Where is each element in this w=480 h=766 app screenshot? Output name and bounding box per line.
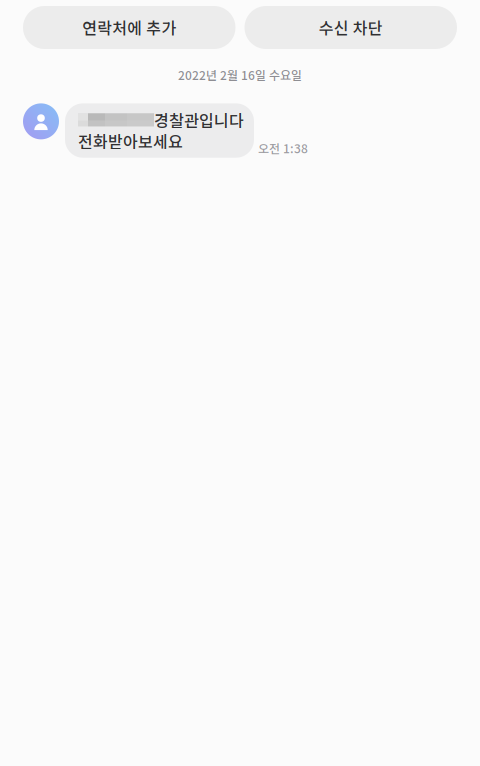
staticText: 전화받아보세요 — [78, 129, 183, 153]
button[interactable]: 연락처에 추가 — [23, 6, 235, 49]
button[interactable]: 경찰관입니다 — [65, 103, 254, 158]
button[interactable]: Sender profile — [23, 103, 59, 139]
staticText: 2022년 2월 16일 수요일 — [178, 66, 302, 83]
button[interactable]: 수신 차단 — [244, 6, 457, 49]
staticText: 연락처에 추가 — [82, 16, 176, 39]
staticText: 수신 차단 — [319, 16, 383, 39]
staticText: 오전 1:38 — [258, 139, 308, 157]
staticText: 경찰관입니다 — [154, 108, 244, 132]
